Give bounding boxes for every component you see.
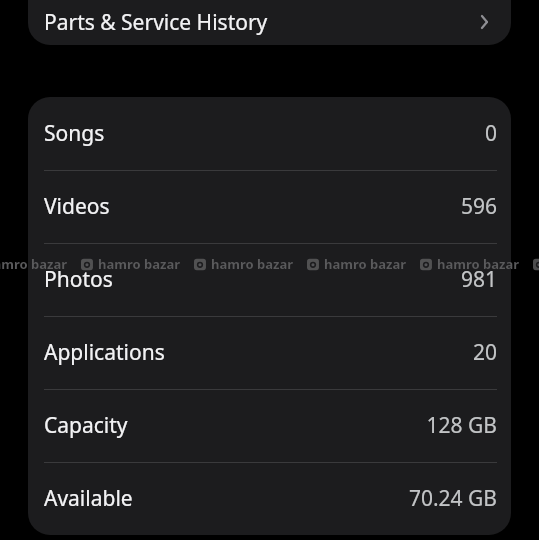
button[interactable]: Applications xyxy=(28,316,511,389)
staticText: Parts & Service History xyxy=(44,8,268,37)
staticText: Capacity xyxy=(44,411,128,440)
staticText: 20 xyxy=(472,338,497,367)
staticText: Songs xyxy=(44,119,105,148)
staticText: hamro bazar xyxy=(211,255,293,273)
staticText: 128 GB xyxy=(426,411,497,440)
staticText: 596 xyxy=(460,192,497,221)
staticText: hamro bazar xyxy=(98,255,180,273)
staticText: Applications xyxy=(44,338,165,367)
other: Open Parts & Service History xyxy=(471,9,497,35)
button[interactable]: Parts & Service History xyxy=(28,0,511,45)
staticText: Videos xyxy=(44,192,110,221)
button[interactable]: Videos xyxy=(28,170,511,243)
staticText: 70.24 GB xyxy=(408,484,497,513)
staticText: hamro bazar xyxy=(437,255,519,273)
button[interactable]: Photos xyxy=(28,243,511,316)
button[interactable]: Capacity xyxy=(28,389,511,462)
staticText: Available xyxy=(44,484,133,513)
staticText: 0 xyxy=(484,119,497,148)
staticText: Photos xyxy=(44,265,113,294)
staticText: hamro bazar xyxy=(0,255,67,273)
button[interactable]: Available xyxy=(28,462,511,535)
button[interactable]: Songs xyxy=(28,97,511,170)
staticText: hamro bazar xyxy=(324,255,406,273)
staticText: 981 xyxy=(460,265,497,294)
